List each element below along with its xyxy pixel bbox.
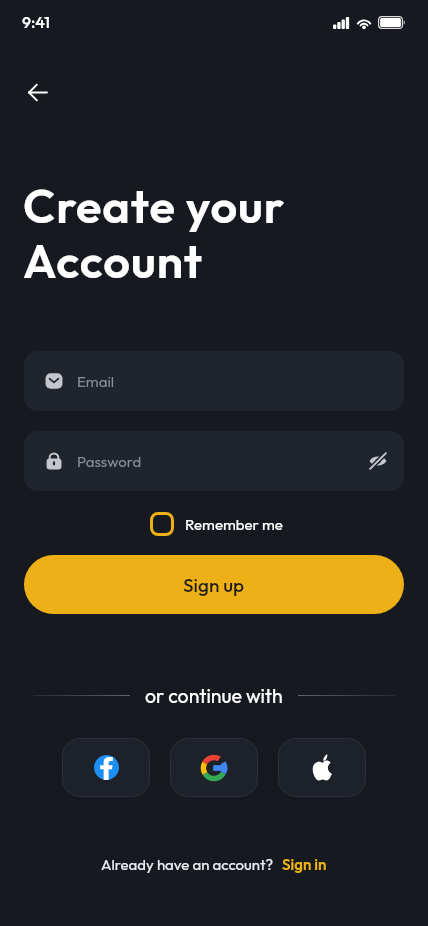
staticText: Sign in xyxy=(282,855,327,874)
staticText: Remember me xyxy=(185,515,283,534)
staticText: 9:41 xyxy=(22,12,51,32)
button[interactable]: Password xyxy=(24,431,404,491)
button[interactable]: Continue with Facebook xyxy=(62,738,150,797)
button[interactable]: Email xyxy=(24,351,404,411)
staticText: Email xyxy=(77,372,115,391)
button[interactable]: Continue with Apple xyxy=(278,738,366,797)
staticText: Already have an account? xyxy=(101,855,274,874)
button[interactable]: Back xyxy=(14,68,62,116)
button[interactable]: Continue with Google xyxy=(170,738,258,797)
button[interactable]: Sign in xyxy=(282,855,327,874)
staticText: or continue with xyxy=(145,683,283,708)
staticText: Password xyxy=(77,452,142,471)
staticText: Sign up xyxy=(183,573,245,597)
button[interactable]: Remember me xyxy=(150,510,283,538)
button[interactable]: Sign up xyxy=(24,555,404,614)
staticText: Create your Account xyxy=(23,176,286,290)
button[interactable]: Show password xyxy=(369,452,387,470)
